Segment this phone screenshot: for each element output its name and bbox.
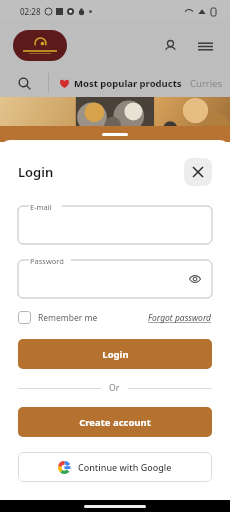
staticText: E-mail bbox=[30, 202, 52, 212]
staticText: Password bbox=[30, 256, 64, 266]
button[interactable]: Account bbox=[159, 35, 181, 57]
staticText: Create account bbox=[79, 416, 151, 429]
button[interactable]: Remember me bbox=[18, 311, 98, 324]
button[interactable]: Create account bbox=[18, 407, 212, 437]
button[interactable]: Login bbox=[18, 339, 212, 369]
staticText: Most popular products bbox=[74, 77, 182, 90]
button[interactable]: Show password bbox=[186, 270, 204, 288]
button[interactable]: Most popular products bbox=[59, 77, 182, 90]
button[interactable]: Menu bbox=[194, 35, 216, 57]
staticText: Login bbox=[102, 348, 129, 361]
button[interactable]: Search bbox=[0, 69, 48, 97]
button[interactable]: Forgot password bbox=[148, 312, 212, 324]
staticText: Continue with Google bbox=[78, 461, 172, 473]
button[interactable]: Close bbox=[184, 158, 212, 186]
button[interactable]: Continue with Google bbox=[18, 452, 212, 482]
button[interactable]: Curries bbox=[190, 77, 223, 90]
button[interactable]: Restaurant logo bbox=[13, 30, 67, 61]
staticText: 02:28 bbox=[20, 6, 41, 17]
staticText: Remember me bbox=[38, 312, 98, 324]
staticText: Login bbox=[18, 163, 54, 181]
staticText: Or bbox=[109, 382, 120, 394]
